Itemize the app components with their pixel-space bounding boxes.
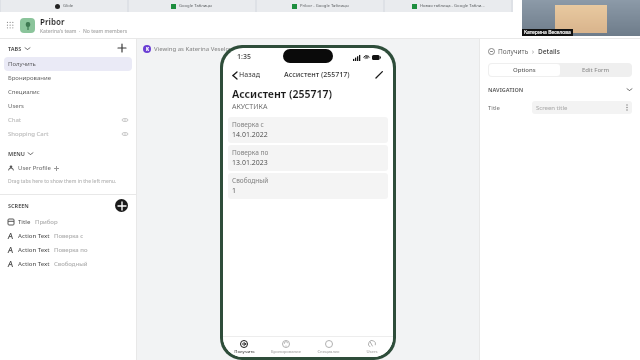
- button[interactable]: Add tab: [116, 42, 128, 54]
- staticText: Edit Form: [582, 66, 610, 74]
- staticText: MENU: [8, 150, 25, 157]
- staticText: Shopping Cart: [8, 130, 49, 138]
- staticText: Получить: [234, 349, 255, 355]
- staticText: Users: [8, 102, 24, 110]
- staticText: Катерина Веселова: [524, 29, 571, 36]
- button[interactable]: Edit Form: [560, 64, 631, 76]
- button[interactable]: Специалис: [4, 85, 132, 99]
- staticText: 1:35: [237, 52, 251, 62]
- button[interactable]: Action Text: [0, 243, 136, 257]
- staticText: Action Text: [18, 260, 50, 268]
- button[interactable]: Glide: [1, 0, 127, 12]
- staticText: Поверка по: [232, 148, 269, 157]
- staticText: Google Таблицы: [179, 3, 213, 9]
- staticText: Свободный: [54, 260, 88, 268]
- staticText: Drag tabs here to show them in the left …: [8, 178, 117, 185]
- staticText: ›: [532, 47, 535, 56]
- button[interactable]: Action Text: [0, 257, 136, 271]
- button[interactable]: Pribor - Google Таблицы: [257, 0, 383, 12]
- staticText: User Profile: [18, 164, 51, 172]
- staticText: Title: [488, 104, 500, 112]
- button[interactable]: Shopping Cart: [4, 127, 132, 141]
- button[interactable]: Data editor: [565, 17, 581, 33]
- staticText: Pribor: [40, 16, 65, 27]
- staticText: Viewing as Katerina Veselova: [154, 45, 236, 53]
- button[interactable]: Новая таблица - Google Табли...: [385, 0, 511, 12]
- staticText: Glide - No Code App Builder -...: [550, 3, 611, 9]
- button[interactable]: Users: [4, 99, 132, 113]
- button[interactable]: Glide - No Code App Builder -...: [513, 0, 639, 12]
- staticText: Screen title: [536, 104, 568, 112]
- staticText: Бронирование: [271, 349, 301, 355]
- staticText: Бронирование: [8, 74, 51, 82]
- button[interactable]: Chat: [4, 113, 132, 127]
- staticText: Users: [366, 349, 378, 355]
- button[interactable]: Users: [350, 337, 393, 357]
- staticText: Chat: [8, 116, 22, 124]
- staticText: Новая таблица - Google Табли...: [420, 3, 485, 9]
- staticText: Свободный: [232, 176, 269, 185]
- button[interactable]: Бронирование: [4, 71, 132, 85]
- staticText: Options: [513, 66, 536, 74]
- staticText: Специалис: [8, 88, 40, 96]
- button[interactable]: Получить: [4, 57, 132, 71]
- staticText: Прибор: [35, 218, 58, 226]
- staticText: SCREEN: [8, 202, 29, 209]
- button[interactable]: Action Text: [0, 229, 136, 243]
- button[interactable]: Settings: [613, 17, 629, 33]
- staticText: Action Text: [18, 246, 50, 254]
- staticText: Получить: [498, 47, 529, 56]
- staticText: Details: [538, 47, 560, 56]
- staticText: Pribor - Google Таблицы: [300, 3, 349, 9]
- staticText: Получить: [8, 60, 36, 68]
- staticText: Ассистент (255717): [232, 87, 333, 101]
- staticText: Katerina's team · No team members: [40, 28, 128, 35]
- button[interactable]: Назад: [231, 68, 262, 82]
- button[interactable]: Title: [0, 215, 136, 229]
- button[interactable]: [20, 18, 35, 33]
- staticText: Action Text: [18, 232, 50, 240]
- staticText: 1: [232, 186, 237, 196]
- staticText: Поверка по: [54, 246, 88, 254]
- staticText: TABS: [8, 45, 22, 52]
- button[interactable]: Google Таблицы: [129, 0, 255, 12]
- button[interactable]: Свободный: [228, 173, 388, 199]
- button[interactable]: Options: [489, 64, 560, 76]
- staticText: АКУСТИКА: [232, 102, 268, 112]
- button[interactable]: Edit: [373, 69, 385, 81]
- button[interactable]: NAVIGATION: [488, 86, 632, 93]
- button[interactable]: [585, 17, 609, 34]
- staticText: Ассистент (255717): [284, 70, 350, 80]
- button[interactable]: Получить: [223, 337, 265, 357]
- button[interactable]: User Profile: [0, 161, 136, 175]
- staticText: Title: [18, 218, 31, 226]
- staticText: NAVIGATION: [488, 86, 524, 93]
- staticText: 14.01.2022: [232, 130, 268, 140]
- button[interactable]: Apps menu: [6, 21, 15, 30]
- button[interactable]: Viewing as Katerina Veselova: [154, 45, 244, 53]
- staticText: Назад: [239, 70, 260, 80]
- staticText: Специалис: [317, 349, 340, 355]
- button[interactable]: Бронирование: [265, 337, 307, 357]
- staticText: Поверка с: [54, 232, 84, 240]
- button[interactable]: Специалис: [307, 337, 350, 357]
- button[interactable]: Поверка с: [228, 117, 388, 143]
- button[interactable]: Add component: [115, 199, 128, 212]
- staticText: K: [146, 46, 149, 52]
- button[interactable]: Screen title: [532, 101, 632, 114]
- staticText: Поверка с: [232, 120, 264, 129]
- staticText: 13.01.2023: [232, 158, 268, 168]
- staticText: Glide: [63, 3, 74, 9]
- button[interactable]: Поверка по: [228, 145, 388, 171]
